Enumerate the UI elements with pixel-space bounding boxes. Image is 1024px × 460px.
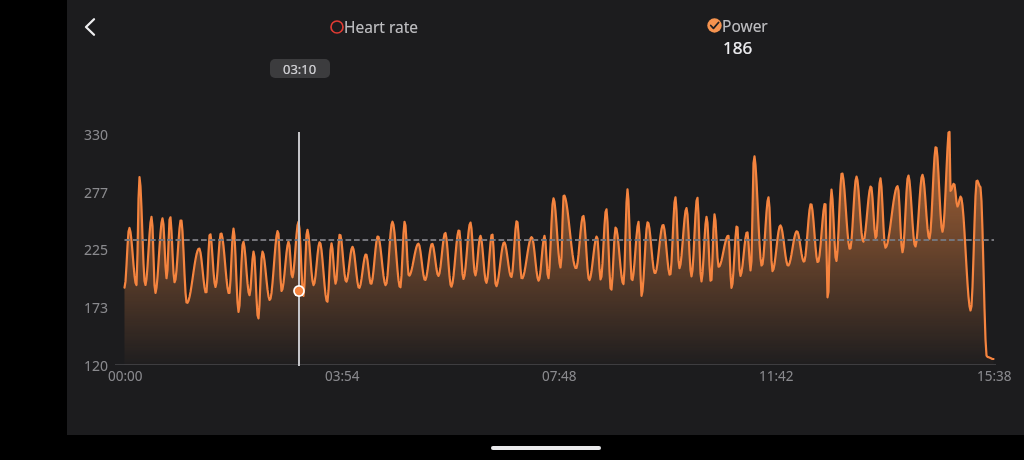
staticText: 00:00	[108, 367, 143, 385]
staticText: 330	[67, 125, 108, 460]
staticText: Power	[722, 15, 768, 36]
staticText: 120	[67, 356, 108, 460]
button[interactable]: Heart rate	[330, 16, 419, 37]
staticText: 186	[723, 36, 753, 59]
staticText: 11:42	[759, 367, 794, 385]
button[interactable]: Back	[71, 8, 109, 46]
staticText: 173	[67, 298, 108, 460]
button[interactable]: 03:10	[270, 59, 330, 78]
staticText: 03:10	[283, 60, 317, 78]
staticText: 277	[67, 183, 108, 460]
staticText: 225	[67, 240, 108, 460]
staticText: 03:54	[325, 367, 360, 385]
staticText: 07:48	[542, 367, 577, 385]
button[interactable]: Power	[707, 15, 768, 59]
staticText: Heart rate	[344, 16, 419, 37]
staticText: 15:38	[977, 367, 1012, 385]
